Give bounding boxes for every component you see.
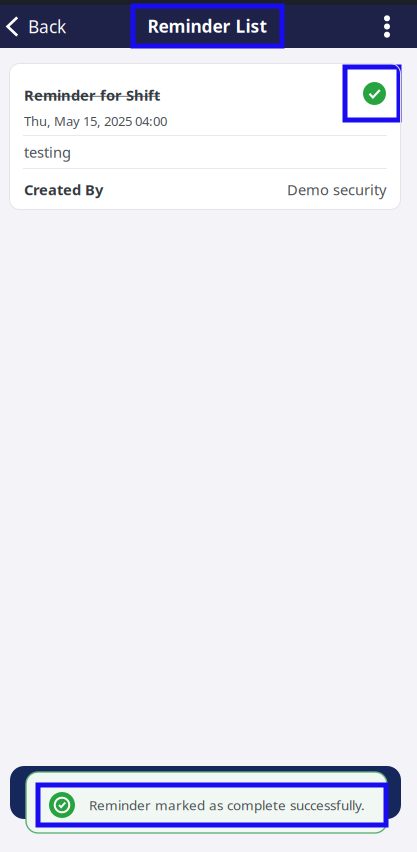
staticText: Demo security [287, 179, 386, 199]
button[interactable]: Back [0, 5, 76, 48]
staticText: Created By [24, 179, 103, 199]
staticText: testing [24, 142, 71, 162]
button[interactable]: Mark reminder complete [345, 67, 399, 120]
staticText: Reminder List [147, 14, 267, 38]
button[interactable]: More options [365, 5, 409, 48]
staticText: Back [28, 15, 66, 38]
staticText: Thu, May 15, 2025 04:00 [24, 112, 167, 130]
staticText: Reminder for Shift [24, 85, 160, 105]
staticText: Reminder marked as complete successfully… [89, 796, 365, 814]
